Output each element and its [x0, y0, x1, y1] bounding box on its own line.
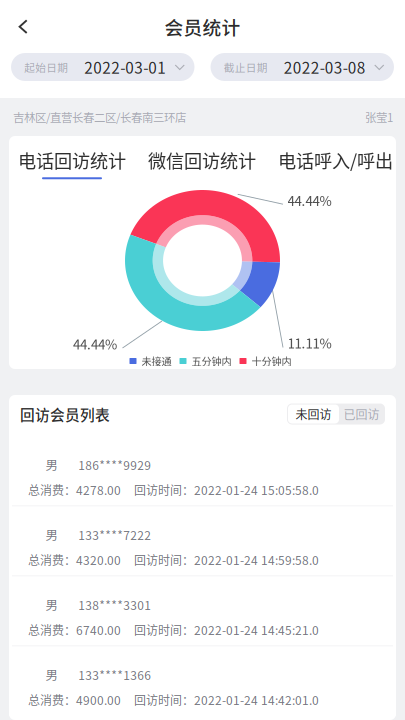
- staticText: 总消费：4278.00: [28, 481, 121, 498]
- button[interactable]: 男: [9, 436, 396, 505]
- staticText: 44.44%: [288, 190, 332, 210]
- staticText: 男: [45, 525, 57, 543]
- button[interactable]: 已回访: [339, 404, 384, 423]
- staticText: 总消费：6740.00: [28, 621, 121, 638]
- staticText: 男: [45, 455, 57, 473]
- staticText: 起始日期: [24, 59, 68, 75]
- button[interactable]: 男: [9, 506, 396, 575]
- staticText: 电话回访统计: [18, 147, 126, 173]
- staticText: 男: [45, 665, 57, 683]
- button[interactable]: 未回访: [288, 404, 339, 423]
- button[interactable]: Back: [0, 8, 46, 45]
- staticText: 总消费：4900.00: [28, 691, 121, 708]
- button[interactable]: 电话呼入/呼出: [278, 147, 393, 179]
- staticText: 未接通: [141, 354, 171, 368]
- button[interactable]: 起始日期: [11, 53, 194, 81]
- staticText: 133****1366: [78, 666, 151, 683]
- staticText: 会员统计: [164, 13, 240, 40]
- button[interactable]: 电话回访统计: [18, 147, 126, 179]
- staticText: 男: [45, 595, 57, 613]
- button[interactable]: 微信回访统计: [148, 147, 256, 179]
- staticText: 微信回访统计: [148, 147, 256, 173]
- staticText: 2022-03-08: [284, 56, 366, 78]
- staticText: 未回访: [295, 405, 331, 423]
- staticText: 吉林区/直营长春二区/长春南三环店: [13, 109, 186, 125]
- staticText: 186****9929: [78, 456, 151, 473]
- button[interactable]: 男: [9, 646, 396, 715]
- button[interactable]: 男: [9, 576, 396, 645]
- staticText: 已回访: [343, 405, 379, 423]
- staticText: 电话呼入/呼出: [278, 147, 393, 173]
- staticText: 十分钟内: [251, 354, 291, 368]
- staticText: 44.44%: [73, 334, 117, 353]
- staticText: 回访时间：2022-01-24 14:42:01.0: [134, 691, 319, 708]
- staticText: 138****3301: [78, 596, 151, 613]
- staticText: 五分钟内: [191, 354, 231, 368]
- staticText: 截止日期: [224, 59, 268, 75]
- staticText: 回访时间：2022-01-24 14:45:21.0: [134, 621, 319, 638]
- staticText: 2022-03-01: [84, 56, 166, 78]
- staticText: 回访时间：2022-01-24 14:59:58.0: [134, 551, 319, 568]
- staticText: 回访会员列表: [20, 403, 110, 425]
- button[interactable]: 截止日期: [210, 53, 394, 81]
- staticText: 11.11%: [288, 333, 332, 352]
- staticText: 回访时间：2022-01-24 15:05:58.0: [134, 481, 319, 498]
- staticText: 总消费：4320.00: [28, 551, 121, 568]
- staticText: 133****7222: [78, 526, 151, 543]
- staticText: 张莹1: [365, 109, 393, 125]
